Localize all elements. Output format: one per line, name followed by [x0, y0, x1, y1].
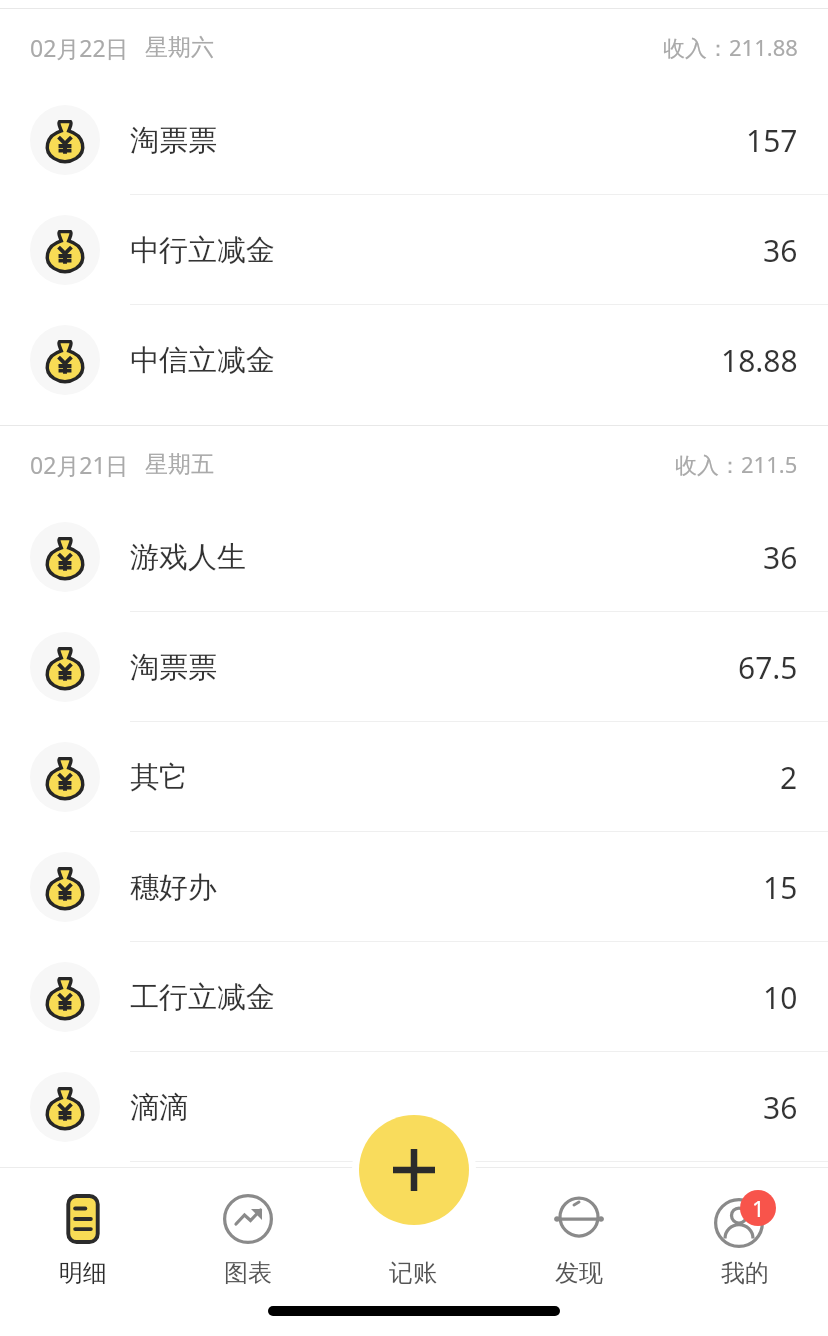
- button[interactable]: 游戏人生: [0, 502, 828, 612]
- staticText: 15: [763, 867, 798, 908]
- staticText: 我的: [721, 1258, 769, 1288]
- button[interactable]: 中行立减金: [0, 1162, 828, 1272]
- staticText: 图表: [224, 1258, 272, 1288]
- button[interactable]: 其它: [0, 722, 828, 832]
- staticText: 02月21日: [30, 449, 129, 480]
- other: 图表: [223, 1194, 273, 1244]
- button[interactable]: 我的: [662, 1168, 828, 1288]
- button[interactable]: 滴滴: [0, 1052, 828, 1162]
- staticText: 02月22日: [30, 32, 129, 63]
- other: 明细: [60, 1196, 106, 1242]
- staticText: 淘票票: [130, 122, 217, 159]
- staticText: 67.5: [738, 647, 798, 688]
- other: 我的: [714, 1190, 776, 1248]
- staticText: 记账: [389, 1258, 437, 1288]
- staticText: 星期五: [145, 450, 214, 479]
- button[interactable]: 发现: [496, 1168, 662, 1288]
- staticText: 中行立减金: [130, 1199, 275, 1236]
- staticText: 中信立减金: [130, 342, 275, 379]
- button[interactable]: 淘票票: [0, 612, 828, 722]
- button[interactable]: 淘票票: [0, 85, 828, 195]
- staticText: 淘票票: [130, 649, 217, 686]
- staticText: 滴滴: [130, 1089, 188, 1126]
- staticText: 穗好办: [130, 869, 217, 906]
- staticText: 发现: [555, 1258, 603, 1288]
- staticText: 36: [763, 1087, 798, 1128]
- button[interactable]: 中行立减金: [0, 195, 828, 305]
- button[interactable]: 记账: [330, 1168, 496, 1288]
- staticText: 18.88: [721, 340, 798, 381]
- staticText: 明细: [59, 1258, 107, 1288]
- staticText: 157: [746, 120, 798, 161]
- button[interactable]: 明细: [0, 1168, 165, 1288]
- staticText: 2: [780, 757, 798, 798]
- button[interactable]: 中信立减金: [0, 305, 828, 415]
- staticText: 1: [752, 1193, 765, 1223]
- staticText: 收入：211.88: [663, 32, 798, 62]
- button[interactable]: 记账: [359, 1115, 469, 1225]
- staticText: 36: [763, 230, 798, 271]
- staticText: 其它: [130, 759, 188, 796]
- staticText: 36: [763, 537, 798, 578]
- staticText: 收入：211.5: [675, 449, 798, 479]
- staticText: 星期六: [145, 33, 214, 62]
- staticText: 10: [763, 977, 798, 1018]
- staticText: 中行立减金: [130, 232, 275, 269]
- staticText: 游戏人生: [130, 539, 246, 576]
- button[interactable]: 图表: [165, 1168, 330, 1288]
- staticText: 20: [763, 1197, 798, 1238]
- button[interactable]: 穗好办: [0, 832, 828, 942]
- other: 发现: [554, 1194, 604, 1244]
- button[interactable]: 工行立减金: [0, 942, 828, 1052]
- staticText: 工行立减金: [130, 979, 275, 1016]
